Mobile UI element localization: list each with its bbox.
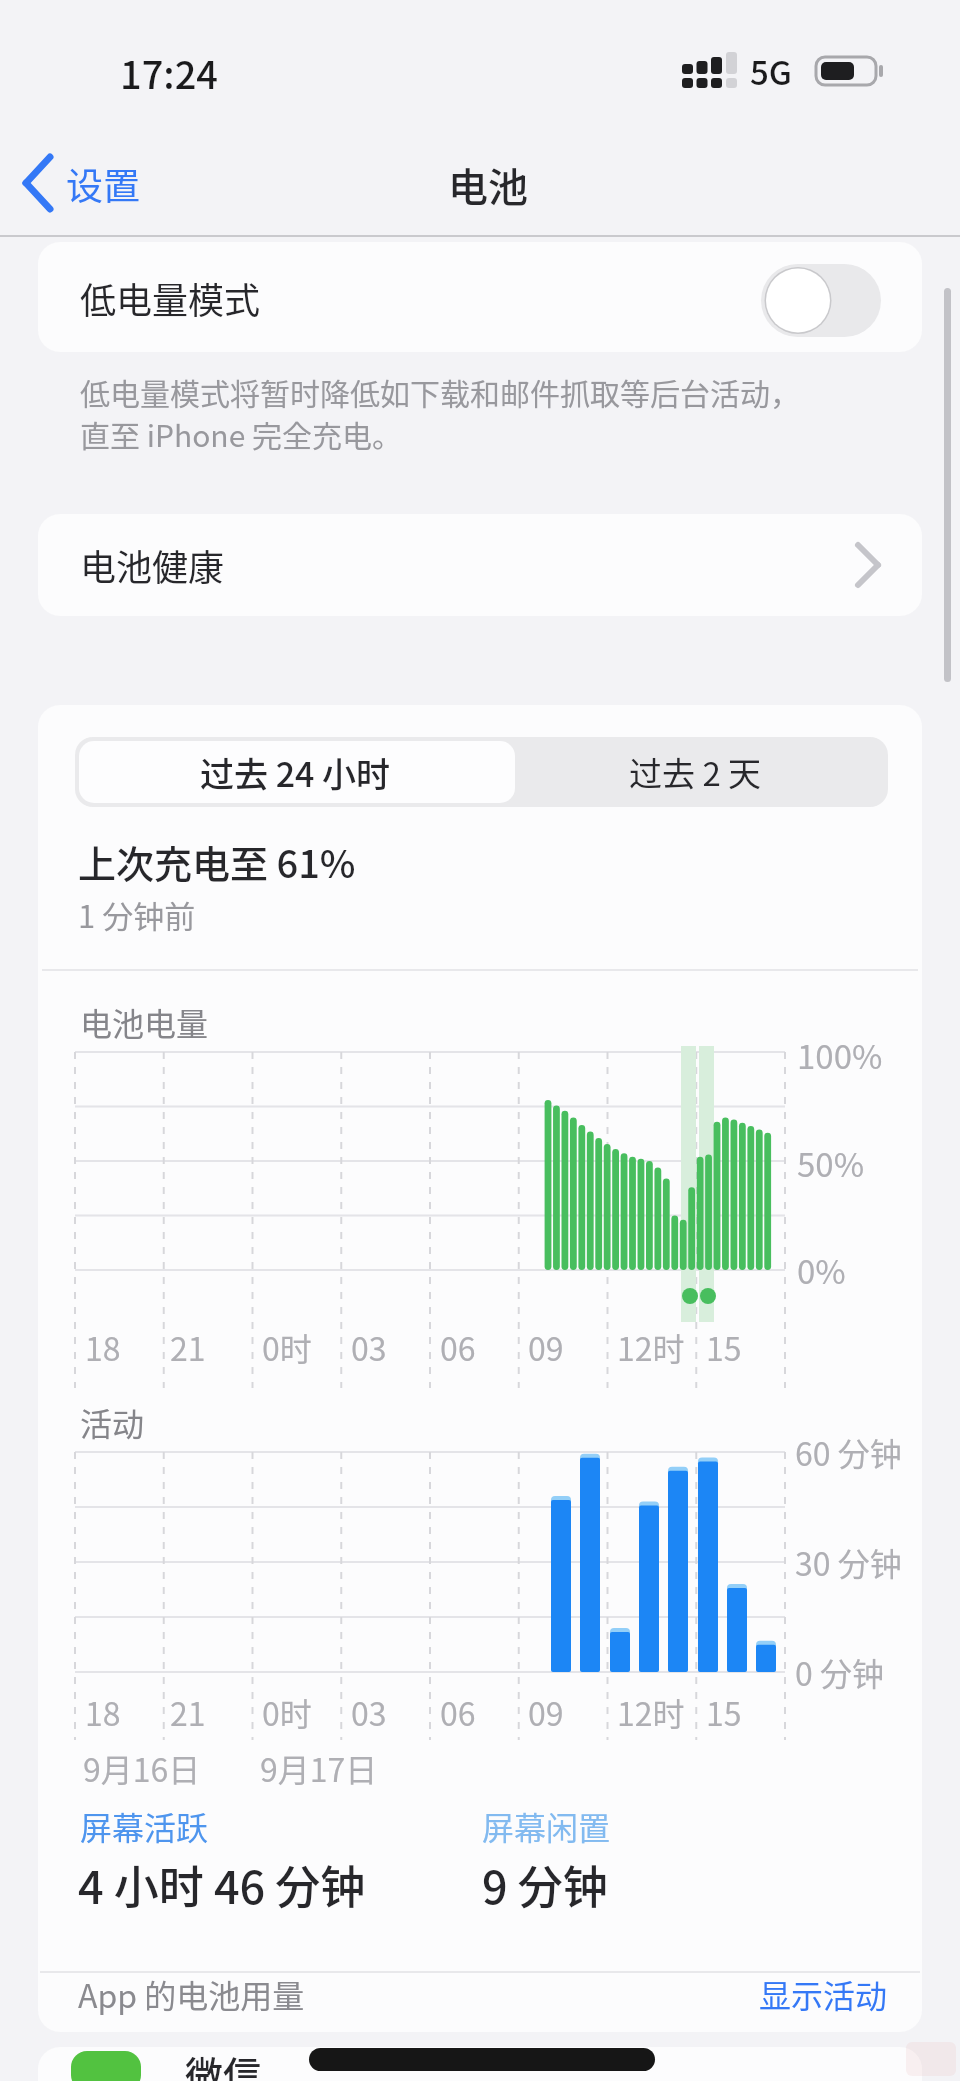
button[interactable] bbox=[507, 741, 884, 803]
staticText: 18 bbox=[85, 1689, 121, 1735]
staticText: 60 分钟 bbox=[795, 1429, 902, 1475]
staticText: 屏幕活跃 bbox=[80, 1803, 209, 1849]
button[interactable]: 显示活动 bbox=[388, 1954, 888, 2034]
staticText: 9月16日 bbox=[83, 1745, 201, 1791]
staticText: 15 bbox=[706, 1689, 742, 1735]
staticText: 0% bbox=[797, 1246, 846, 1294]
staticText: 过去 24 小时 bbox=[200, 748, 391, 797]
staticText: 电池 bbox=[448, 156, 528, 214]
staticText: 30 分钟 bbox=[795, 1539, 902, 1585]
button[interactable] bbox=[79, 741, 515, 803]
staticText: 9 分钟 bbox=[482, 1852, 608, 1917]
staticText: 过去 2 天 bbox=[629, 748, 762, 796]
staticText: 09 bbox=[528, 1689, 564, 1735]
staticText: 15 bbox=[706, 1324, 742, 1370]
staticText: 03 bbox=[351, 1324, 387, 1370]
staticText: 显示活动 bbox=[759, 1971, 888, 2017]
staticText: 06 bbox=[440, 1324, 476, 1370]
staticText: 17:24 bbox=[120, 45, 218, 100]
staticText: App 的电池用量 bbox=[78, 1971, 305, 2017]
staticText: 低电量模式 bbox=[80, 272, 261, 324]
staticText: 屏幕闲置 bbox=[482, 1803, 611, 1849]
staticText: 03 bbox=[351, 1689, 387, 1735]
button[interactable]: 设置 bbox=[66, 144, 140, 224]
staticText: 设置 bbox=[66, 157, 140, 211]
button[interactable] bbox=[38, 242, 922, 352]
staticText: 06 bbox=[440, 1689, 476, 1735]
staticText: 18 bbox=[85, 1324, 121, 1370]
staticText: 0时 bbox=[262, 1324, 312, 1370]
staticText: 21 bbox=[170, 1324, 206, 1370]
staticText: 电池健康 bbox=[80, 539, 225, 591]
staticText: 4 小时 46 分钟 bbox=[78, 1852, 366, 1917]
staticText: 1 分钟前 bbox=[78, 892, 196, 937]
button[interactable] bbox=[38, 514, 922, 616]
staticText: 0时 bbox=[262, 1689, 312, 1735]
staticText: 电池电量 bbox=[80, 999, 209, 1045]
staticText: 21 bbox=[170, 1689, 206, 1735]
staticText: 直至 iPhone 完全充电。 bbox=[80, 412, 402, 455]
staticText: 100% bbox=[797, 1031, 883, 1079]
staticText: 09 bbox=[528, 1324, 564, 1370]
staticText: 微信 bbox=[185, 2045, 262, 2081]
button[interactable] bbox=[38, 2047, 922, 2081]
staticText: 低电量模式将暂时降低如下载和邮件抓取等后台活动， bbox=[80, 370, 800, 413]
staticText: 12时 bbox=[617, 1689, 685, 1735]
staticText: 12时 bbox=[617, 1324, 685, 1370]
staticText: 5G bbox=[750, 47, 792, 95]
staticText: 0 分钟 bbox=[795, 1649, 884, 1695]
staticText: 活动 bbox=[80, 1399, 145, 1445]
staticText: 上次充电至 61% bbox=[78, 834, 356, 889]
staticText: 9月17日 bbox=[260, 1745, 378, 1791]
staticText: 50% bbox=[797, 1139, 865, 1187]
